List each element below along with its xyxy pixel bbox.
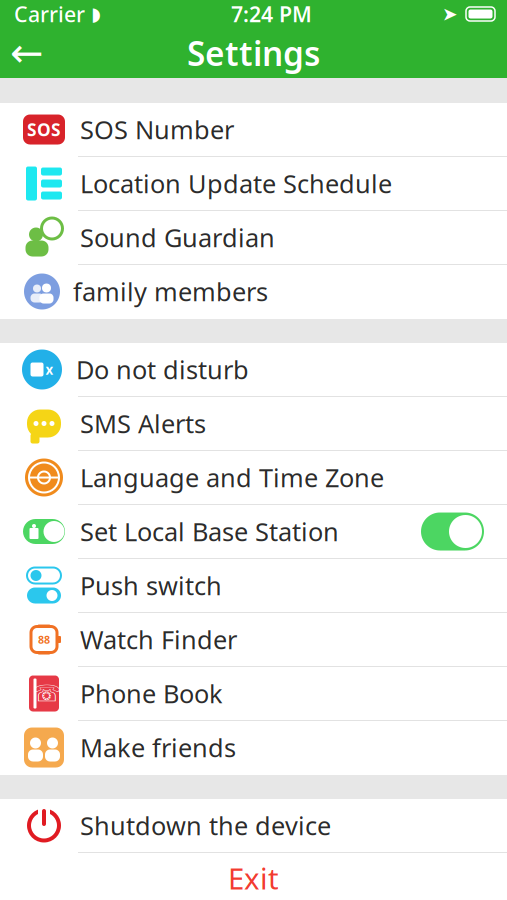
button[interactable]: 88 [0,613,507,667]
button[interactable]: x [0,343,507,397]
staticText: Carrier [14,0,85,28]
staticText: SOS Number [80,113,234,146]
button[interactable]: Location Update Schedule [0,157,507,211]
staticText: Phone Book [80,677,223,710]
button[interactable]: Language and Time Zone [0,451,507,505]
staticText: Location Update Schedule [80,167,392,200]
staticText: ➤ [442,3,458,25]
button[interactable]: Set Local Base Station [0,505,507,559]
button[interactable]: Make friends [0,721,507,775]
staticText: ☏ [33,681,61,706]
staticText: ◗ [91,3,101,25]
staticText: Shutdown the device [80,809,331,842]
button[interactable]: Shutdown the device [0,799,507,853]
button[interactable]: SOS [0,103,507,157]
staticText: 7:24 PM [231,0,312,28]
button[interactable]: Exit [0,853,507,900]
staticText: ← [10,30,44,76]
button[interactable]: SMS Alerts [0,397,507,451]
button[interactable]: ☏ [0,667,507,721]
staticText: Push switch [80,569,222,602]
button[interactable]: family members [0,265,507,319]
staticText: Language and Time Zone [80,461,384,494]
button[interactable]: Back [0,28,54,78]
staticText: x [45,361,53,378]
button[interactable]: Sound Guardian [0,211,507,265]
staticText: 88 [38,632,50,647]
staticText: Watch Finder [80,623,237,656]
staticText: Do not disturb [76,353,249,386]
staticText: Settings [187,31,320,75]
staticText: family members [73,275,268,308]
staticText: SMS Alerts [80,407,206,440]
staticText: Sound Guardian [80,221,275,254]
staticText: SOS [27,118,61,141]
staticText: Exit [228,858,279,897]
staticText: Make friends [80,731,236,764]
staticText: Set Local Base Station [80,515,339,548]
button[interactable]: Push switch [0,559,507,613]
